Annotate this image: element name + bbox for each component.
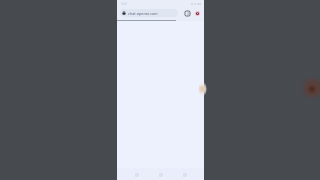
button[interactable]: Home [156, 170, 165, 179]
staticText: 3 [187, 12, 189, 16]
button[interactable]: Account [192, 8, 202, 18]
button[interactable]: Recent apps [180, 170, 189, 179]
staticText: 9:41 [121, 1, 128, 6]
staticText: chat.openai.com [128, 11, 158, 16]
button[interactable]: Back [132, 170, 141, 179]
button[interactable]: Switch tabs [182, 8, 192, 18]
button[interactable]: chat.openai.com [120, 9, 178, 17]
